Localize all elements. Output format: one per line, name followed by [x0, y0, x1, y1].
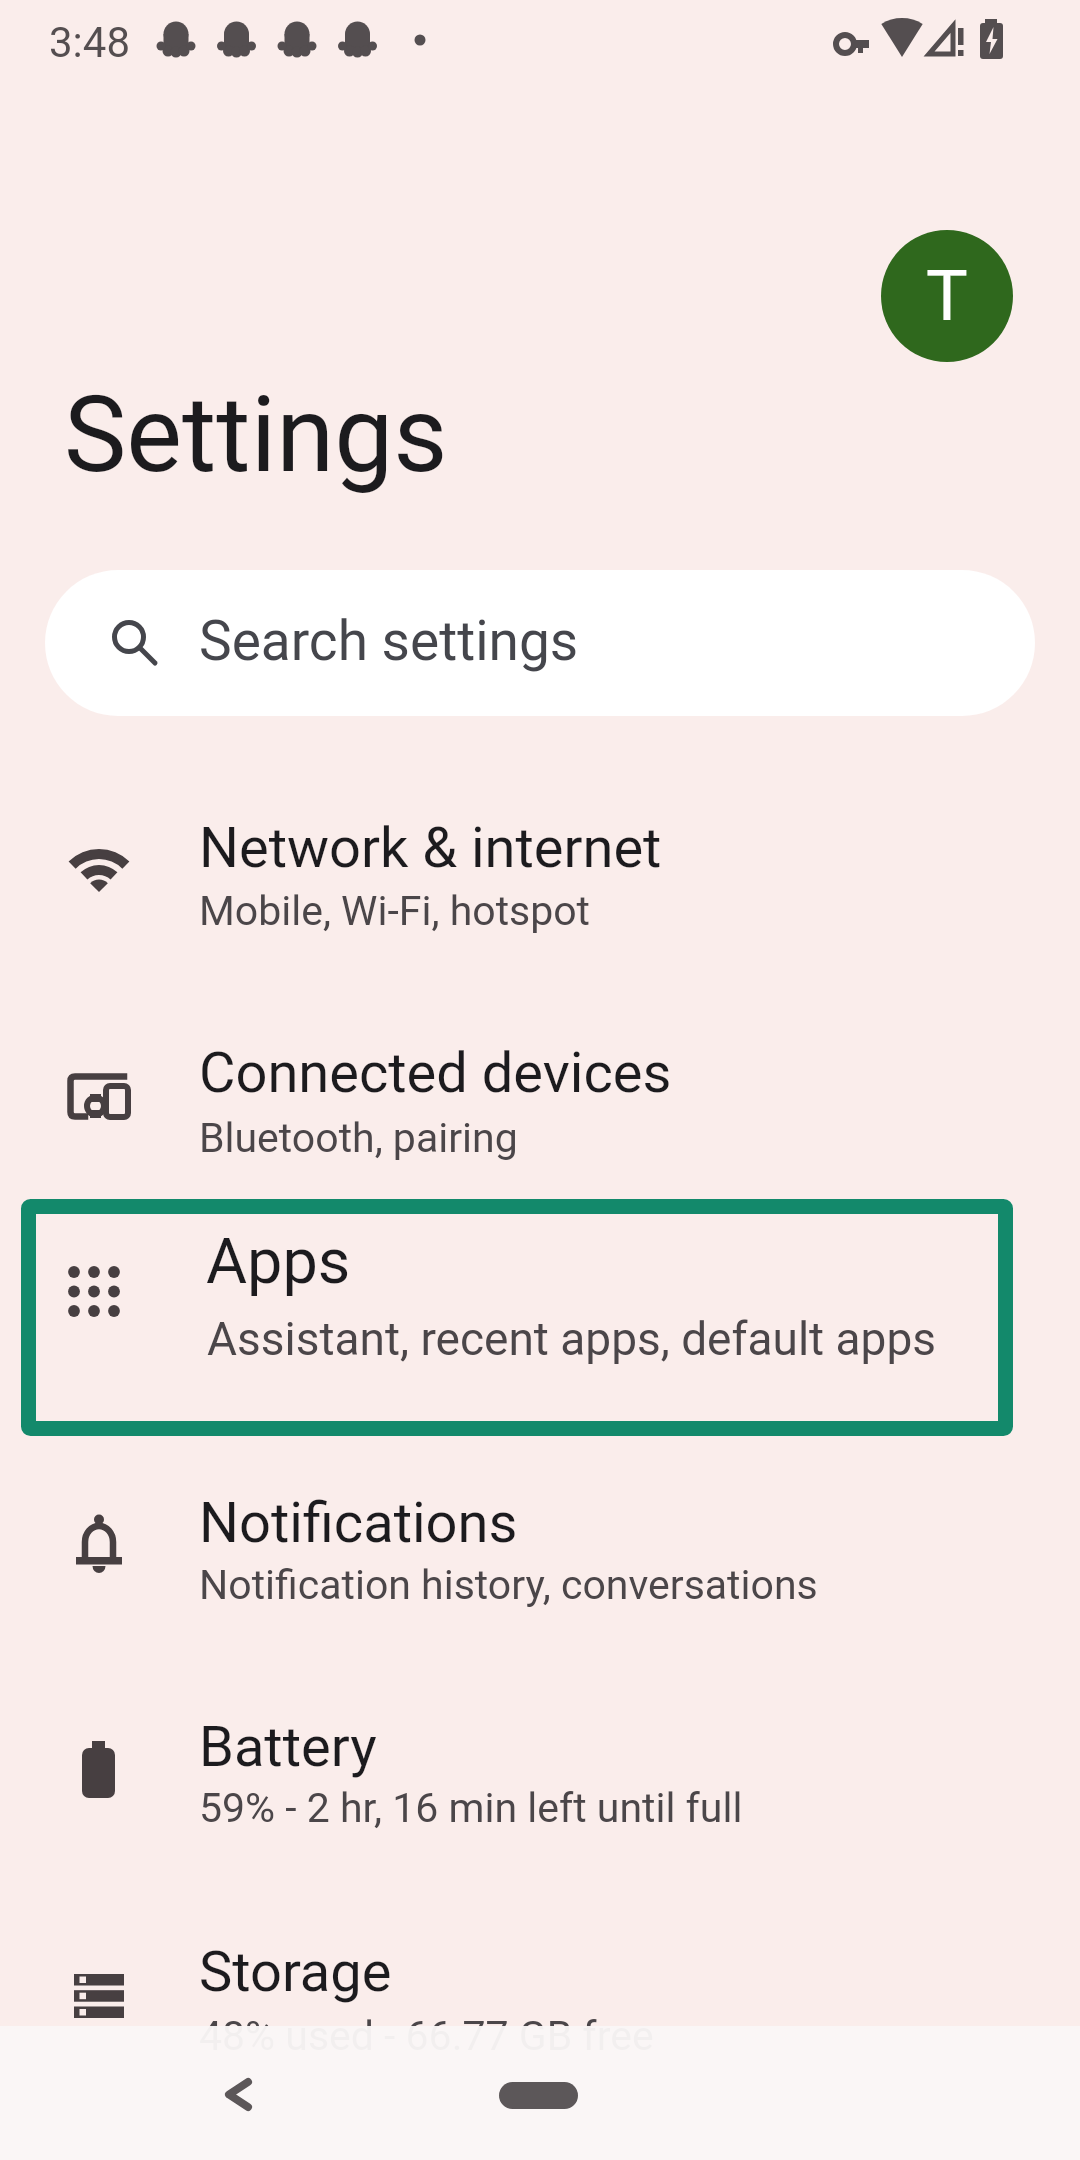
button[interactable] — [0, 1208, 1080, 1398]
staticText: 59% - 2 hr, 16 min left until full — [199, 1784, 743, 1832]
staticText: Assistant, recent apps, default apps — [207, 1312, 936, 1366]
button[interactable] — [45, 570, 1035, 716]
staticText: Bluetooth, pairing — [199, 1114, 518, 1162]
staticText: T — [926, 255, 968, 337]
staticText: Mobile, Wi-Fi, hotspot — [199, 887, 591, 935]
button[interactable] — [499, 2082, 578, 2109]
staticText: Battery — [199, 1714, 377, 1780]
staticText: 48% used - 66.77 GB free — [199, 2012, 654, 2060]
button[interactable] — [0, 1913, 1080, 2103]
staticText: Notifications — [199, 1490, 518, 1556]
staticText: Network & internet — [199, 815, 662, 881]
staticText: Connected devices — [199, 1040, 672, 1106]
staticText: Notification history, conversations — [199, 1561, 818, 1609]
staticText: Search settings — [199, 609, 579, 673]
staticText: 3:48 — [49, 18, 130, 67]
staticText: Apps — [206, 1225, 351, 1299]
button[interactable] — [0, 1014, 1080, 1204]
button[interactable] — [190, 2056, 290, 2134]
staticText: Storage — [199, 1939, 392, 2005]
staticText: Settings — [64, 374, 448, 497]
button[interactable] — [0, 790, 1080, 980]
button[interactable]: T — [881, 230, 1013, 362]
button[interactable] — [0, 1464, 1080, 1654]
button[interactable] — [0, 1689, 1080, 1879]
